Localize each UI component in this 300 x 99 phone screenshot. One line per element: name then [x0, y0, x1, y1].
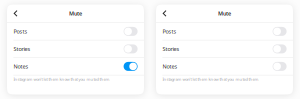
staticText: Mute [218, 10, 231, 17]
button[interactable]: Stories [7, 40, 144, 57]
button[interactable]: Stories [156, 40, 293, 57]
staticText: Instagram won't let them know that you m… [162, 76, 259, 82]
staticText: Posts [162, 28, 176, 35]
button[interactable]: Posts [7, 23, 144, 40]
staticText: Mute [69, 10, 82, 17]
staticText: Instagram won't let them know that you m… [13, 76, 110, 82]
staticText: Stories [13, 45, 30, 53]
button[interactable]: Back [7, 4, 23, 22]
button[interactable]: Notes [7, 58, 144, 75]
staticText: Stories [162, 45, 179, 53]
staticText: Notes [13, 63, 28, 70]
button[interactable]: Back [156, 4, 172, 22]
staticText: Notes [162, 63, 177, 70]
button[interactable]: Notes [156, 58, 293, 75]
button[interactable]: Posts [156, 23, 293, 40]
staticText: Posts [13, 28, 27, 35]
